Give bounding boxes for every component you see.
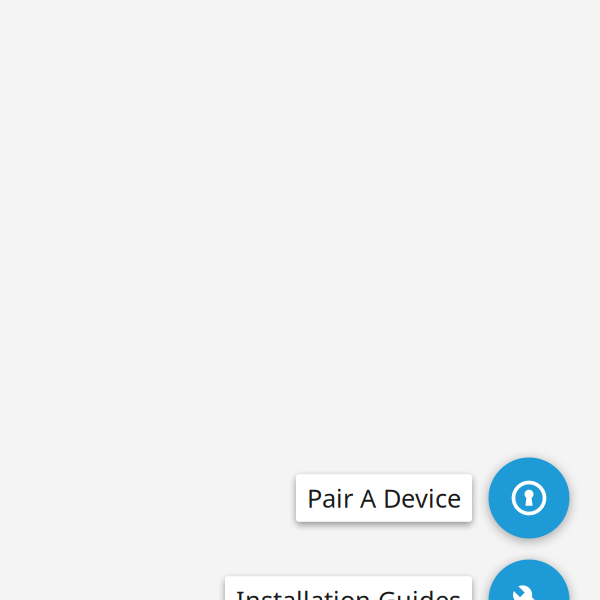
button[interactable]: Installation Guides <box>225 576 472 600</box>
button[interactable]: Installation Guides <box>488 559 569 600</box>
button[interactable]: Pair A Device <box>488 457 569 538</box>
staticText: Installation Guides <box>236 583 461 600</box>
staticText: Pair A Device <box>307 481 461 515</box>
button[interactable]: Pair A Device <box>296 474 472 522</box>
